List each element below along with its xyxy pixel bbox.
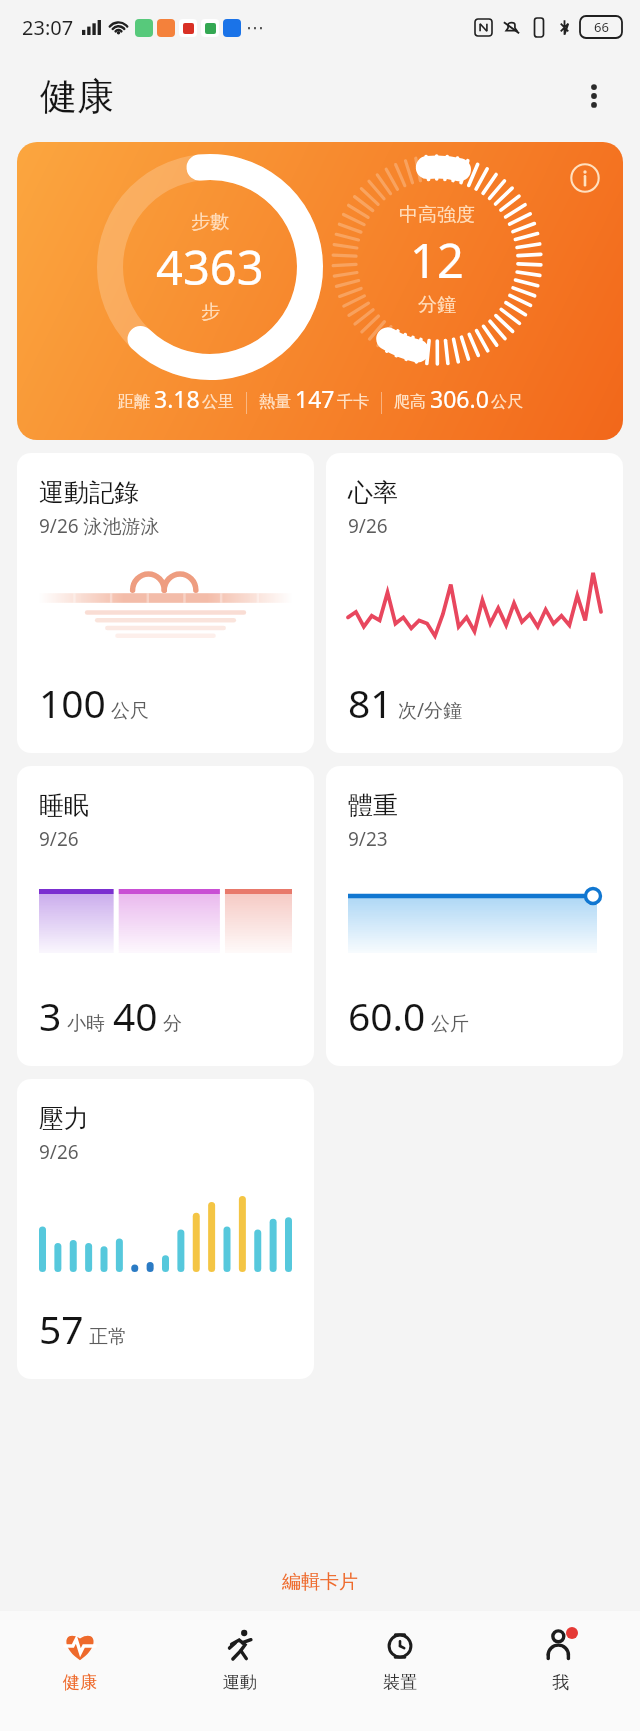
staticText: 睡眠 (39, 790, 89, 821)
staticText: 健康 (40, 73, 114, 120)
button[interactable]: Info (17, 142, 623, 440)
staticText: 次/分鐘 (398, 697, 463, 723)
button[interactable]: 壓力 (17, 1079, 314, 1379)
staticText: 編輯卡片 (282, 1570, 358, 1594)
staticText: 壓力 (39, 1103, 89, 1134)
staticText: 健康 (63, 1672, 97, 1693)
staticText: 公尺 (491, 392, 523, 412)
button[interactable]: 健康 (0, 1611, 160, 1731)
staticText: 熱量 (259, 392, 291, 412)
button[interactable]: Info (565, 158, 605, 198)
staticText: 裝置 (383, 1672, 417, 1693)
staticText: 81 (348, 676, 393, 729)
staticText: 4363 (156, 235, 264, 299)
staticText: 9/26 (348, 513, 388, 539)
button[interactable]: 體重 (326, 766, 623, 1066)
staticText: 9/26 泳池游泳 (39, 513, 160, 539)
button[interactable]: 運動記錄 (17, 453, 314, 753)
staticText: 中高強度 (399, 203, 475, 227)
staticText: 9/26 (39, 1139, 79, 1165)
staticText: 心率 (348, 477, 398, 508)
staticText: 小時 (67, 1012, 105, 1036)
staticText: 3.18 (154, 383, 200, 414)
staticText: 公里 (202, 392, 234, 412)
staticText: 運動 (223, 1672, 257, 1693)
staticText: ⋯ (246, 17, 264, 38)
staticText: 306.0 (430, 383, 489, 414)
staticText: 距離 (118, 392, 150, 412)
staticText: 分 (163, 1012, 182, 1036)
button[interactable]: 運動 (160, 1611, 320, 1731)
button[interactable]: 我 (480, 1611, 640, 1731)
staticText: 9/23 (348, 826, 388, 852)
staticText: 147 (295, 383, 335, 414)
staticText: 9/26 (39, 826, 79, 852)
staticText: 運動記錄 (39, 477, 139, 508)
staticText: 12 (410, 228, 464, 292)
staticText: 40 (113, 989, 158, 1042)
button[interactable]: 睡眠 (17, 766, 314, 1066)
staticText: 我 (552, 1672, 569, 1693)
staticText: 體重 (348, 790, 398, 821)
staticText: 步數 (191, 210, 229, 234)
staticText: 正常 (89, 1325, 127, 1349)
staticText: 66 (594, 18, 609, 36)
staticText: 60.0 (348, 989, 426, 1042)
staticText: 57 (39, 1302, 84, 1355)
button[interactable]: 裝置 (320, 1611, 480, 1731)
staticText: 23:07 (22, 14, 74, 41)
staticText: 公斤 (431, 1012, 469, 1036)
staticText: 步 (201, 300, 220, 324)
staticText: 爬高 (394, 392, 426, 412)
staticText: 3 (39, 989, 62, 1042)
staticText: 100 (39, 676, 106, 729)
button[interactable]: 心率 (326, 453, 623, 753)
staticText: 公尺 (111, 699, 149, 723)
staticText: 分鐘 (418, 293, 456, 317)
button[interactable]: More options (570, 72, 618, 120)
button[interactable]: 編輯卡片 (0, 1559, 640, 1605)
staticText: 千卡 (337, 392, 369, 412)
